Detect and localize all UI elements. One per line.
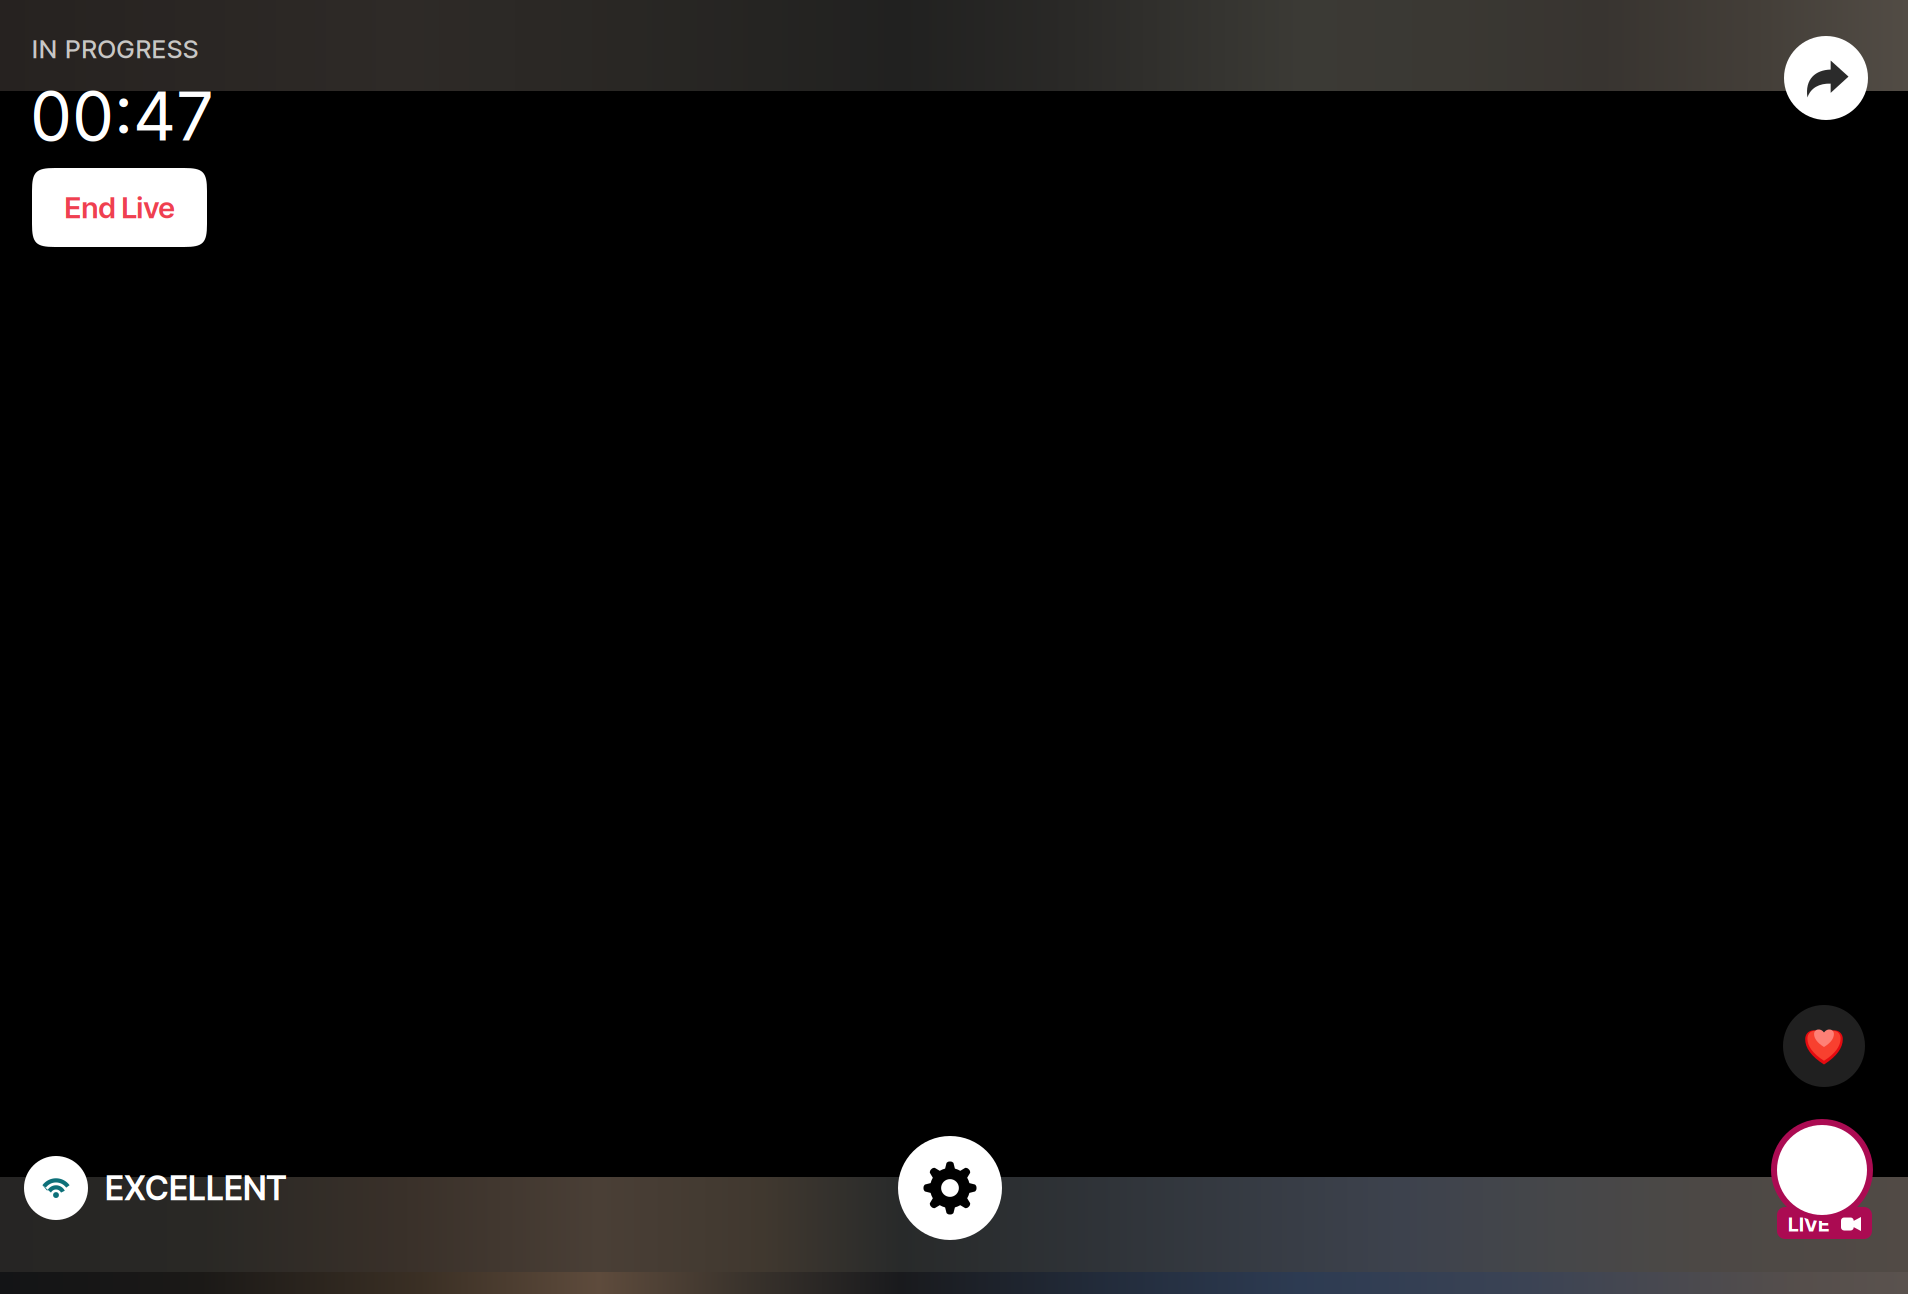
staticText: LIVE bbox=[1788, 1212, 1830, 1236]
staticText: 00:47 bbox=[30, 76, 214, 157]
button[interactable]: Settings bbox=[898, 1136, 1002, 1240]
button[interactable]: Send a heart bbox=[1783, 1005, 1865, 1087]
button[interactable]: Stop recording bbox=[1771, 1119, 1878, 1239]
staticText: EXCELLENT bbox=[105, 1168, 287, 1208]
staticText: IN PROGRESS bbox=[32, 34, 198, 64]
staticText: End Live bbox=[64, 190, 174, 225]
button[interactable]: End Live bbox=[32, 168, 207, 247]
button[interactable]: Share bbox=[1784, 36, 1868, 120]
button[interactable]: EXCELLENT bbox=[24, 1156, 308, 1220]
